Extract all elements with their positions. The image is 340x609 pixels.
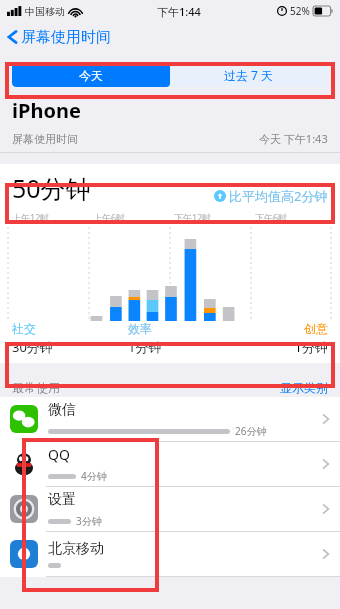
staticText: 屏幕使用时间 (12, 132, 78, 146)
other: Details (322, 502, 330, 516)
button[interactable]: 今天 (12, 63, 170, 87)
staticText: 比平均值高2分钟 (229, 187, 328, 205)
staticText: 今天 (79, 68, 103, 83)
staticText: 上午6时 (93, 211, 126, 223)
staticText: 北京移动 (48, 540, 104, 558)
staticText: 1分钟 (128, 338, 244, 356)
button[interactable]: 社交 (12, 321, 128, 356)
staticText: QQ (48, 445, 70, 464)
staticText: 下午12时 (174, 211, 212, 223)
staticText: 52% (290, 4, 310, 18)
button[interactable]: 屏幕使用时间 (6, 22, 111, 52)
button[interactable]: 创意 (244, 321, 328, 356)
staticText: 中国移动 (25, 5, 65, 18)
staticText: 下午1:44 (157, 4, 201, 19)
staticText: 显示类别 (280, 380, 328, 395)
button[interactable]: 设置 (0, 487, 340, 532)
staticText: 3分钟 (76, 514, 102, 528)
staticText: 1分钟 (244, 338, 328, 356)
button[interactable]: 显示类别 (280, 380, 328, 395)
button[interactable]: 效率 (128, 321, 244, 356)
staticText: 设置 (48, 491, 76, 509)
staticText: 效率 (128, 321, 244, 336)
other: Details (322, 547, 330, 561)
staticText: 26分钟 (235, 424, 267, 438)
staticText: 社交 (12, 321, 128, 336)
staticText: 上午12时 (12, 211, 50, 223)
button[interactable]: QQ (0, 442, 340, 487)
staticText: 今天 下午1:43 (259, 131, 328, 146)
staticText: 屏幕使用时间 (21, 28, 111, 47)
staticText: 最常使用 (12, 380, 60, 395)
staticText: 4分钟 (81, 469, 107, 483)
other: Details (322, 457, 330, 471)
button[interactable]: 过去 7 天 (170, 63, 328, 87)
staticText: 30分钟 (12, 338, 128, 356)
staticText: 50分钟 (12, 171, 91, 205)
staticText: 创意 (244, 321, 328, 336)
button[interactable]: 微信 (0, 397, 340, 442)
staticText: iPhone (12, 97, 81, 124)
staticText: 下午6时 (255, 211, 288, 223)
staticText: 微信 (48, 401, 76, 419)
button[interactable]: 北京移动 (0, 532, 340, 577)
staticText: 过去 7 天 (224, 67, 274, 83)
other: Details (322, 412, 330, 426)
